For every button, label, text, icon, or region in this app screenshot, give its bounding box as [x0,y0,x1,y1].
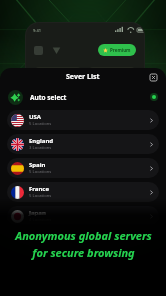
staticText: Anonymous global servers [15,228,152,243]
button[interactable]: England [7,134,159,154]
staticText: 3 Locations [29,145,52,151]
staticText: Spain [29,161,46,169]
button[interactable]: USA [7,110,159,130]
button[interactable]: Close [148,72,158,82]
staticText: Auto select [30,93,67,102]
staticText: Japan [29,209,46,217]
staticText: 5 Locations [29,193,52,199]
staticText: 5 Locations [29,169,52,175]
staticText: 9:41 [33,28,41,33]
button[interactable]: Japan [7,206,159,226]
button[interactable]: Auto select [0,86,166,108]
staticText: England [29,137,54,145]
button[interactable]: Menu [34,46,43,55]
button[interactable]: Premium [98,44,136,56]
staticText: USA [29,113,41,121]
staticText: Sever List [66,72,100,82]
staticText: Premium [110,47,131,53]
button[interactable]: Protection [52,46,61,55]
staticText: France [29,185,50,193]
button[interactable]: France [7,182,159,202]
button[interactable]: Spain [7,158,159,178]
staticText: 5 Locations [29,121,52,127]
staticText: for secure browsing [32,245,135,260]
